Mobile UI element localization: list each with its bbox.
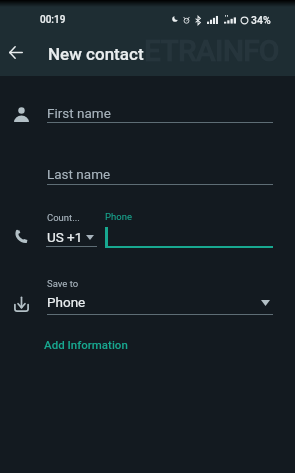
staticText: Count... (47, 212, 80, 223)
staticText: Phone (47, 294, 86, 310)
staticText: Last name (47, 166, 111, 182)
staticText: Add Information (44, 338, 128, 351)
staticText: US +1 (47, 229, 83, 245)
button[interactable] (40, 274, 280, 316)
staticText: ETRAINFO (144, 33, 279, 68)
button[interactable] (100, 208, 275, 250)
staticText: First name (47, 105, 111, 121)
button[interactable] (40, 96, 280, 126)
staticText: 34% (251, 14, 271, 26)
staticText: New contact (48, 44, 144, 64)
staticText: Phone (105, 211, 132, 222)
staticText: Save to (47, 278, 79, 289)
button[interactable]: Add Information (40, 332, 150, 356)
staticText: 00:19 (40, 14, 66, 26)
button[interactable] (40, 158, 280, 188)
button[interactable]: Back (0, 35, 33, 70)
button[interactable] (40, 208, 98, 250)
